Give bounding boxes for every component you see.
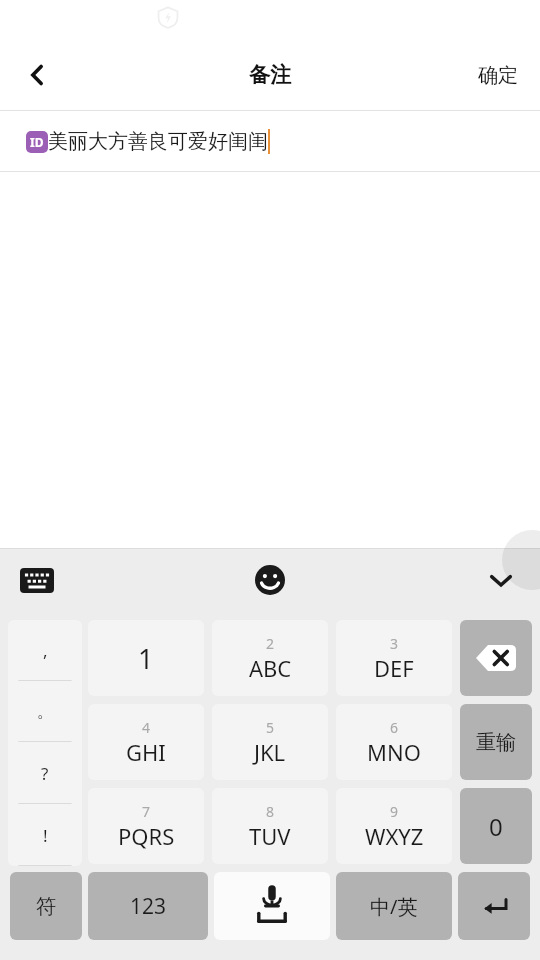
- staticText: JKL: [254, 737, 286, 767]
- staticText: 3: [390, 634, 399, 653]
- button[interactable]: 1: [88, 620, 204, 696]
- button[interactable]: ,: [8, 620, 82, 681]
- button[interactable]: ?: [8, 742, 82, 804]
- staticText: 5: [266, 718, 275, 737]
- staticText: ,: [43, 639, 48, 662]
- staticText: 符: [36, 894, 56, 919]
- button[interactable]: 符: [10, 872, 82, 940]
- staticText: 6: [390, 718, 399, 737]
- button[interactable]: 9: [336, 788, 452, 864]
- button[interactable]: 8: [212, 788, 328, 864]
- staticText: MNO: [367, 737, 421, 767]
- button[interactable]: 123: [88, 872, 208, 940]
- staticText: PQRS: [118, 821, 175, 851]
- staticText: 美丽大方善良可爱好闺闺: [48, 129, 268, 154]
- button[interactable]: 。: [8, 681, 82, 742]
- button[interactable]: !: [8, 804, 82, 866]
- button[interactable]: 6: [336, 704, 452, 780]
- button[interactable]: Hide keyboard: [478, 557, 524, 603]
- button[interactable]: ID: [0, 110, 540, 172]
- staticText: ID: [30, 134, 44, 150]
- button[interactable]: 5: [212, 704, 328, 780]
- staticText: 2: [266, 634, 275, 653]
- staticText: ABC: [249, 653, 292, 683]
- staticText: 7: [142, 802, 151, 821]
- staticText: DEF: [374, 653, 414, 683]
- button[interactable]: 4: [88, 704, 204, 780]
- button[interactable]: 确定: [456, 40, 540, 110]
- button[interactable]: Enter: [458, 872, 530, 940]
- staticText: 重输: [476, 730, 516, 755]
- staticText: !: [43, 824, 48, 847]
- button[interactable]: 0: [460, 788, 532, 864]
- staticText: 备注: [249, 62, 291, 88]
- staticText: ?: [41, 762, 49, 785]
- button[interactable]: 重输: [460, 704, 532, 780]
- button[interactable]: Switch keyboard: [14, 557, 60, 603]
- staticText: 1: [138, 640, 154, 677]
- button[interactable]: 2: [212, 620, 328, 696]
- staticText: 9: [390, 802, 399, 821]
- button[interactable]: Emoji: [247, 557, 293, 603]
- staticText: 0: [489, 810, 503, 843]
- staticText: 。: [37, 701, 54, 722]
- button[interactable]: Space and voice input: [214, 872, 330, 940]
- staticText: 8: [266, 802, 275, 821]
- staticText: 中/英: [370, 893, 418, 920]
- button[interactable]: 3: [336, 620, 452, 696]
- button[interactable]: 中/英: [336, 872, 452, 940]
- staticText: GHI: [126, 737, 166, 767]
- button[interactable]: Back: [0, 40, 74, 110]
- button[interactable]: Backspace: [460, 620, 532, 696]
- staticText: 确定: [478, 63, 518, 88]
- staticText: WXYZ: [365, 821, 424, 851]
- staticText: 4: [142, 718, 151, 737]
- staticText: TUV: [249, 821, 291, 851]
- staticText: 123: [130, 892, 167, 921]
- button[interactable]: 7: [88, 788, 204, 864]
